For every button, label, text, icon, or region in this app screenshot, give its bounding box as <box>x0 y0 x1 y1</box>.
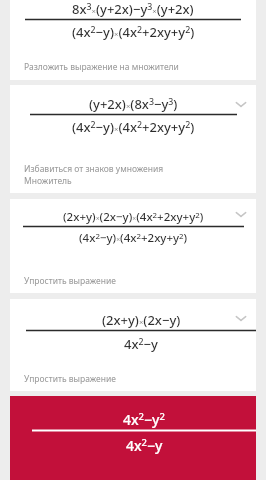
button[interactable]: Expand step <box>232 205 250 223</box>
staticText: 4x2−y <box>126 436 163 455</box>
staticText: Избавиться от знаков умножения <box>24 163 164 175</box>
staticText: Упростить выражение <box>24 275 116 287</box>
staticText: Множитель <box>24 175 72 187</box>
staticText: (y+2x)×(8x3−y3) <box>89 95 178 113</box>
staticText: (2x+y)×(2x−y)×(4x2+2xy+y2) <box>63 209 204 225</box>
staticText: (4x2−y)×(4x2+2xy+y2) <box>72 118 195 136</box>
staticText: Упростить выражение <box>24 373 116 385</box>
button[interactable]: Expand step <box>232 95 250 113</box>
staticText: (2x+y)×(2x−y) <box>102 311 181 329</box>
button[interactable]: Expand step <box>232 309 250 327</box>
button[interactable]: 8x3×(y+2x)−y3×(y+2x) <box>10 0 256 80</box>
button[interactable]: (2x+y)×(2x−y)×(4x2+2xy+y2) <box>10 199 256 293</box>
button[interactable]: (2x+y)×(2x−y) <box>10 299 256 391</box>
staticText: (4x2−y)×(4x2+2xy+y2) <box>72 23 195 41</box>
staticText: Разложить выражение на множители <box>24 61 179 73</box>
staticText: (4x2−y)×(4x2+2xy+y2) <box>79 230 188 246</box>
staticText: 4x2−y2 <box>123 410 165 429</box>
button[interactable]: 4x2−y2 <box>10 396 256 480</box>
staticText: 8x3×(y+2x)−y3×(y+2x) <box>72 0 194 18</box>
staticText: 4x2−y <box>124 335 158 353</box>
button[interactable]: (y+2x)×(8x3−y3) <box>10 85 256 193</box>
